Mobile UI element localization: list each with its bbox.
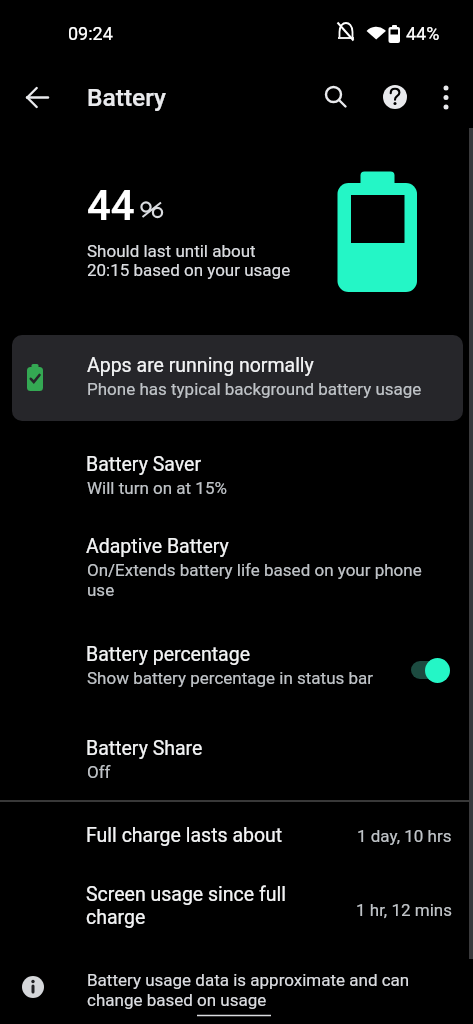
staticText: Will turn on at 15%: [87, 478, 227, 498]
staticText: Apps are running normally: [87, 354, 314, 377]
button[interactable]: Battery usage data is approximate and ca…: [0, 956, 473, 1024]
button[interactable]: [426, 77, 466, 117]
staticText: 1 hr, 12 mins: [356, 900, 452, 920]
button[interactable]: [375, 77, 415, 117]
button[interactable]: Adaptive Battery: [0, 519, 473, 621]
staticText: 44: [87, 181, 135, 230]
staticText: 44%: [406, 23, 440, 44]
staticText: charge: [86, 906, 146, 929]
staticText: 1 day, 10 hrs: [357, 826, 452, 846]
staticText: Off: [87, 762, 111, 782]
staticText: 09:24: [68, 23, 113, 44]
button[interactable]: Full charge lasts about: [0, 802, 473, 866]
button[interactable]: [17, 77, 57, 117]
button[interactable]: Screen usage since full: [0, 866, 473, 956]
staticText: Phone has typical background battery usa…: [87, 379, 422, 399]
staticText: 20:15 based on your usage: [87, 260, 291, 280]
button[interactable]: Battery percentage: [0, 627, 473, 717]
staticText: Show battery percentage in status bar: [87, 668, 374, 688]
staticText: Battery percentage: [86, 643, 251, 666]
staticText: Adaptive Battery: [86, 535, 229, 558]
staticText: change based on usage: [87, 990, 267, 1010]
button[interactable]: Battery Share: [0, 721, 473, 799]
button[interactable]: Battery Saver: [0, 437, 473, 517]
staticText: On/Extends battery life based on your ph…: [87, 560, 422, 580]
staticText: use: [87, 580, 115, 600]
button[interactable]: [315, 77, 355, 117]
staticText: Battery Saver: [86, 453, 202, 476]
staticText: Full charge lasts about: [86, 824, 283, 847]
staticText: Screen usage since full: [86, 883, 287, 906]
button[interactable]: Apps are running normally: [12, 335, 463, 421]
staticText: Battery Share: [86, 737, 203, 760]
staticText: Battery: [87, 83, 166, 112]
staticText: Should last until about: [87, 241, 256, 261]
staticText: Battery usage data is approximate and ca…: [87, 970, 410, 990]
